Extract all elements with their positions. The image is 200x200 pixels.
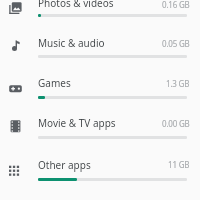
staticText: 0.00 GB — [162, 118, 190, 129]
button[interactable]: Music & audio — [0, 25, 200, 66]
staticText: 1.3 GB — [166, 78, 190, 89]
staticText: Games — [38, 76, 71, 90]
button[interactable]: Movie & TV apps — [0, 106, 200, 147]
staticText: 11 GB — [168, 159, 190, 170]
staticText: Other apps — [38, 158, 91, 172]
staticText: Movie & TV apps — [38, 116, 116, 130]
button[interactable]: Games — [0, 66, 200, 107]
staticText: 0.16 GB — [162, 0, 190, 10]
button[interactable]: Photos & videos — [0, 0, 200, 25]
staticText: Photos & videos — [38, 0, 114, 10]
button[interactable]: Other apps — [0, 148, 200, 189]
staticText: Music & audio — [38, 36, 105, 50]
staticText: 0.05 GB — [162, 38, 190, 49]
